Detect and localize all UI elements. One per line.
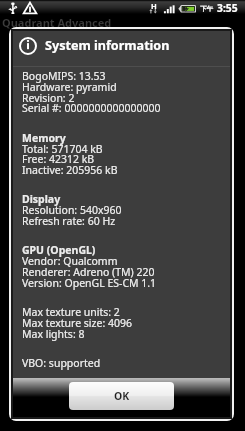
staticText: Total: 571704 kB	[22, 142, 103, 156]
staticText: Revision: 2	[22, 91, 75, 105]
staticText: Serial #: 0000000000000000	[22, 101, 161, 115]
staticText: Max texture units: 2	[22, 305, 120, 319]
staticText: Display	[22, 192, 61, 206]
staticText: Inactive: 205956 kB	[22, 163, 118, 177]
staticText: Free: 42312 kB	[22, 152, 95, 166]
staticText: 3:55	[217, 1, 238, 15]
other: Information	[19, 37, 37, 55]
staticText: H	[151, 1, 157, 11]
staticText: Memory	[22, 131, 66, 145]
button[interactable]: OK	[69, 382, 174, 410]
staticText: Resolution: 540x960	[22, 203, 122, 217]
staticText: Refresh rate: 60 Hz	[22, 214, 116, 228]
staticText: Hardware: pyramid	[22, 80, 117, 94]
staticText: Version: OpenGL ES-CM 1.1	[22, 276, 157, 290]
staticText: Renderer: Adreno (TM) 220	[22, 265, 155, 279]
staticText: OK	[114, 389, 130, 403]
staticText: Max texture size: 4096	[22, 316, 132, 330]
staticText: BogoMIPS: 13.53	[22, 69, 106, 83]
staticText: VBO: supported	[22, 356, 101, 370]
staticText: 下午	[200, 5, 214, 13]
staticText: System information	[45, 37, 170, 54]
staticText: Max lights: 8	[22, 327, 85, 341]
staticText: GPU (OpenGL)	[22, 243, 96, 257]
staticText: Quadrant Advanced	[2, 15, 112, 30]
staticText: Vendor: Qualcomm	[22, 254, 118, 268]
